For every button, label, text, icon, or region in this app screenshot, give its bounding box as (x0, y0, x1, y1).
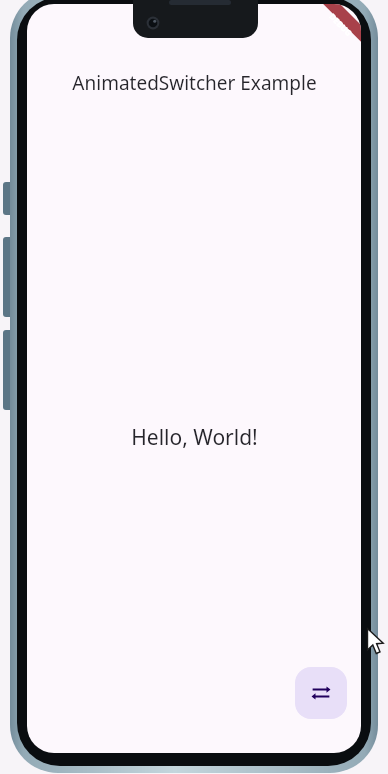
staticText: DEBUG (327, 11, 355, 38)
staticText: Hello, World! (131, 423, 258, 452)
button[interactable]: Switch (295, 667, 347, 719)
staticText: AnimatedSwitcher Example (72, 70, 317, 96)
